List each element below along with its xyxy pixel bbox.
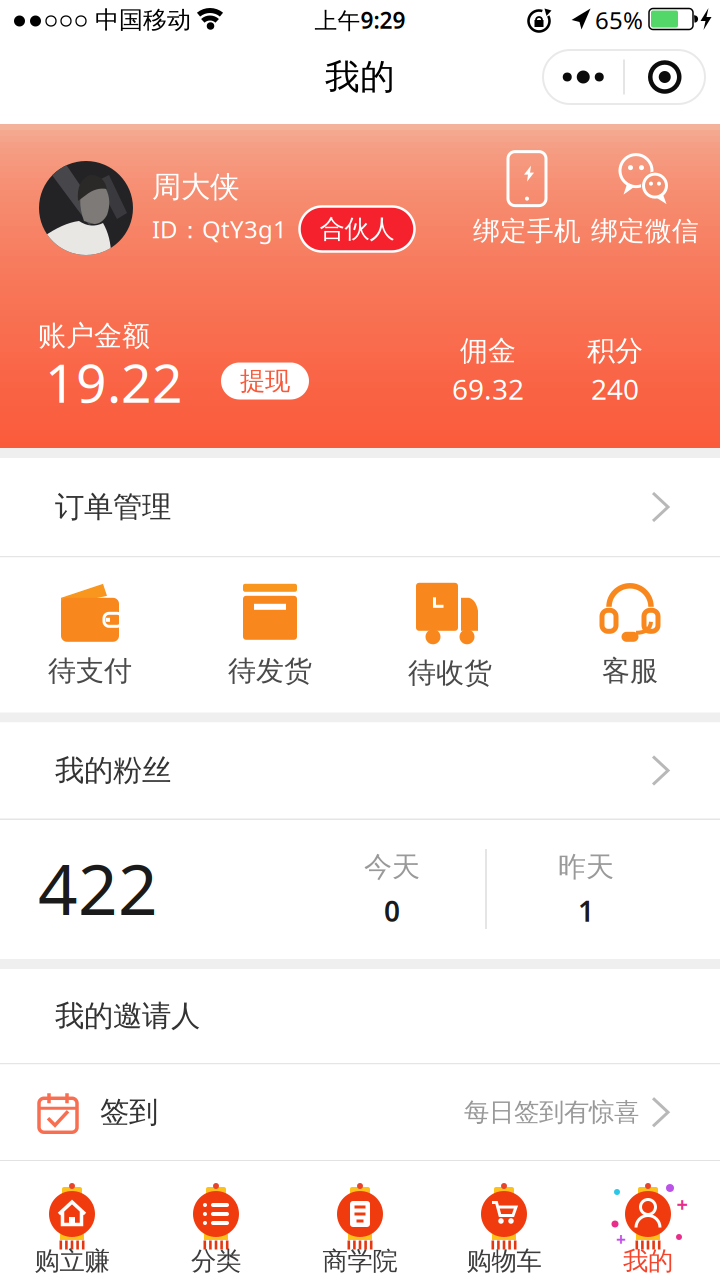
staticText: 积分 [587,334,643,368]
staticText: 合伙人 [319,213,394,244]
button[interactable]: 关闭 [625,50,705,104]
button[interactable]: 待发货 [180,582,360,688]
staticText: 我的邀请人 [55,998,200,1034]
staticText: 购立赚 [34,1245,109,1276]
button[interactable]: 我的粉丝 [0,722,720,818]
button[interactable]: 签到 [0,1064,720,1160]
button[interactable]: 绑定微信 [591,149,699,247]
staticText: 每日签到有惊喜 [464,1097,639,1128]
staticText: 我的 [623,1245,673,1276]
button[interactable]: 绑定手机 [473,151,581,247]
button[interactable]: 商学院 [288,1161,432,1280]
staticText: 1 [578,892,594,930]
staticText: 65% [595,4,643,36]
button[interactable]: + [576,1161,720,1280]
staticText: 上午9:29 [314,5,405,35]
staticText: 待支付 [48,654,132,688]
button[interactable]: 待支付 [0,582,180,688]
staticText: 待发货 [228,654,312,688]
staticText: 购物车 [466,1245,541,1276]
staticText: 分类 [191,1245,241,1276]
staticText: 周大侠 [152,169,239,205]
staticText: ID：QtY3g1 [152,213,287,245]
staticText: 绑定微信 [591,215,699,247]
button[interactable]: 我的邀请人 [0,969,720,1063]
button[interactable]: 合伙人 [299,206,414,251]
staticText: 我的粉丝 [55,752,171,788]
staticText: 中国移动 [95,5,191,35]
button[interactable]: 更多 [543,50,623,104]
staticText: 我的 [325,56,395,98]
button[interactable]: 分类 [144,1161,288,1280]
button[interactable]: 待收货 [360,580,540,690]
button[interactable]: 客服 [540,582,720,688]
staticText: 19.22 [45,347,183,417]
button[interactable]: 购立赚 [0,1161,144,1280]
staticText: 签到 [100,1094,158,1130]
button[interactable]: 订单管理 [0,458,720,556]
staticText: 佣金 [460,334,516,368]
staticText: 账户金额 [38,319,150,353]
button[interactable]: 购物车 [432,1161,576,1280]
staticText: 订单管理 [55,489,171,525]
staticText: 商学院 [322,1245,397,1276]
staticText: 69.32 [452,370,524,408]
staticText: + [676,1191,687,1217]
staticText: 422 [38,842,158,934]
staticText: 客服 [602,654,658,688]
staticText: 0 [384,892,400,930]
staticText: + [616,1227,626,1250]
staticText: 240 [591,370,639,408]
button[interactable]: 提现 [221,362,309,399]
button[interactable]: 头像 [39,161,133,255]
staticText: 今天 [364,850,420,884]
staticText: 提现 [240,365,290,396]
staticText: 昨天 [558,850,614,884]
staticText: 待收货 [408,656,492,690]
staticText: 绑定手机 [473,215,581,247]
